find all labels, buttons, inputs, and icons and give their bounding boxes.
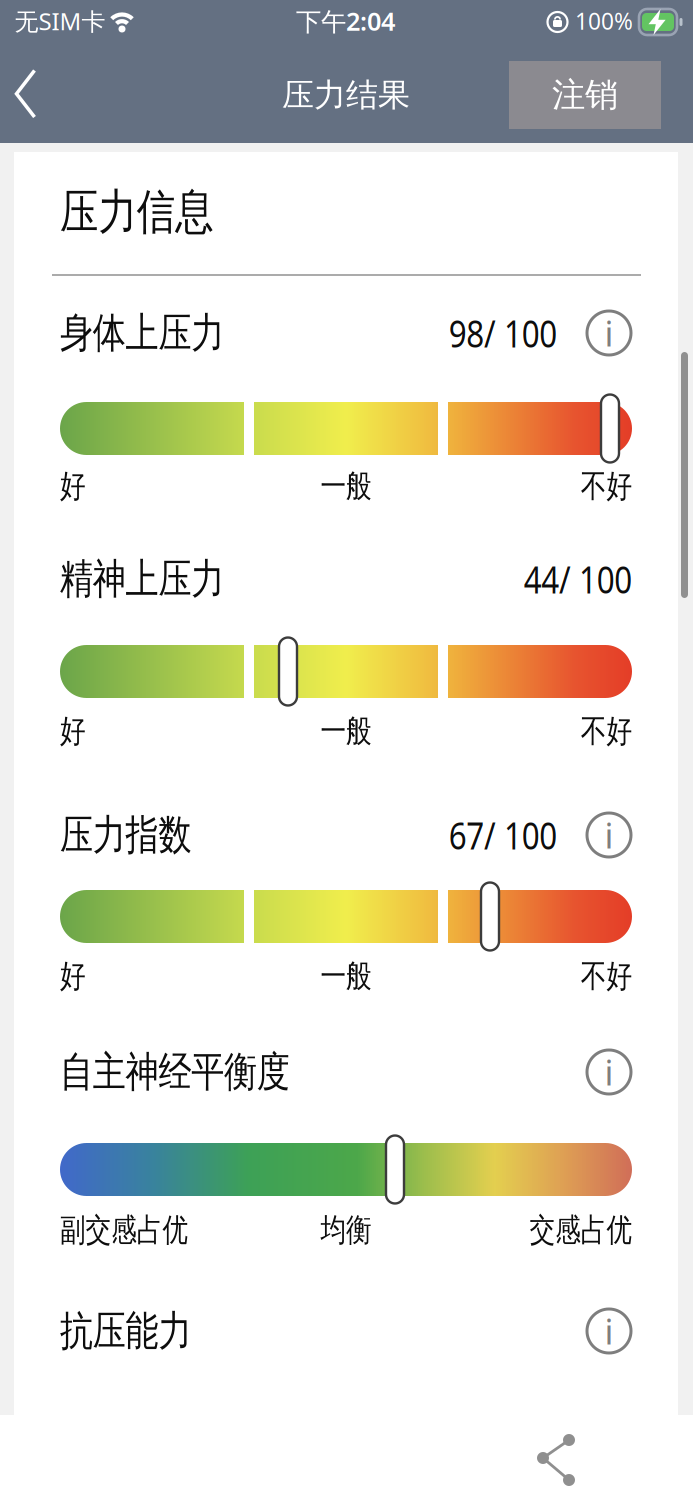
staticText: 一般: [314, 466, 378, 506]
button[interactable]: Back: [0, 0, 50, 60]
staticText: 副交感占优: [60, 1210, 220, 1250]
staticText: 好: [60, 466, 92, 506]
button[interactable]: Info: [586, 1049, 632, 1095]
staticText: 均衡: [314, 1210, 378, 1250]
staticText: 好: [60, 711, 92, 751]
staticText: 下午2:04: [296, 4, 395, 38]
button[interactable]: Share: [534, 1435, 580, 1487]
staticText: 抗压能力: [60, 1306, 224, 1356]
staticText: i: [604, 1049, 613, 1095]
staticText: 一般: [314, 956, 378, 996]
staticText: 注销: [552, 74, 618, 115]
staticText: 无SIM卡: [14, 5, 105, 37]
staticText: 压力信息: [60, 182, 252, 241]
staticText: 不好: [568, 466, 632, 506]
staticText: 好: [60, 956, 92, 996]
button[interactable]: Info: [586, 1308, 632, 1354]
button[interactable]: Info: [586, 812, 632, 858]
staticText: 一般: [314, 711, 378, 751]
staticText: 不好: [568, 956, 632, 996]
staticText: 100%: [575, 6, 633, 36]
staticText: 交感占优: [504, 1210, 632, 1250]
staticText: i: [604, 1308, 613, 1354]
button[interactable]: Info: [586, 310, 632, 356]
staticText: 67/ 100: [428, 810, 557, 860]
staticText: 不好: [568, 711, 632, 751]
staticText: i: [604, 310, 613, 356]
staticText: i: [604, 812, 613, 858]
staticText: 压力结果: [282, 75, 410, 115]
staticText: 压力指数: [60, 810, 224, 860]
staticText: 44/ 100: [503, 554, 632, 604]
staticText: 98/ 100: [428, 308, 557, 358]
staticText: 身体上压力: [60, 308, 265, 358]
button[interactable]: 注销: [509, 61, 661, 129]
staticText: 自主神经平衡度: [60, 1047, 347, 1097]
staticText: 精神上压力: [60, 554, 265, 604]
